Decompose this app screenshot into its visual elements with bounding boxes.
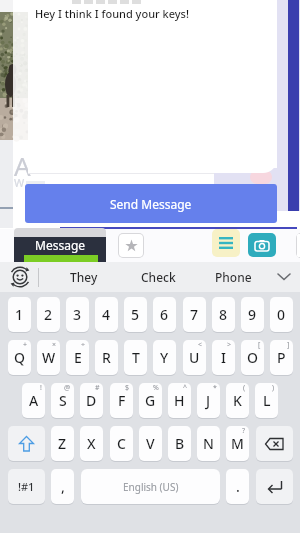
staticText: ? (242, 426, 246, 436)
button[interactable]: They (56, 262, 112, 292)
button[interactable]: X (80, 426, 103, 461)
staticText: B (175, 434, 185, 453)
button[interactable]: P (270, 340, 293, 375)
button[interactable]: G (139, 383, 162, 418)
staticText: 4 (102, 305, 111, 324)
staticText: K (233, 391, 242, 410)
button[interactable]: , (51, 469, 74, 504)
button[interactable]: O (241, 340, 264, 375)
button[interactable]: B (168, 426, 191, 461)
button[interactable] (8, 426, 45, 461)
button[interactable] (248, 233, 276, 257)
button[interactable] (212, 229, 240, 257)
button[interactable]: 2 (37, 297, 60, 332)
staticText: I (221, 348, 226, 367)
staticText: 8 (219, 305, 228, 324)
button[interactable]: N (197, 426, 220, 461)
staticText: 9 (248, 305, 257, 324)
button[interactable]: Message (14, 237, 106, 262)
button[interactable]: E (66, 340, 89, 375)
staticText: A (14, 148, 31, 183)
button[interactable]: T (124, 340, 147, 375)
staticText: They (70, 269, 98, 285)
button[interactable]: Phone (205, 262, 261, 292)
button[interactable]: 3 (66, 297, 89, 332)
staticText: 6 (160, 305, 169, 324)
button[interactable]: Y (153, 340, 176, 375)
staticText: !#1 (18, 479, 35, 494)
staticText: @ (64, 383, 71, 393)
staticText: D (86, 391, 97, 410)
button[interactable]: S (51, 383, 74, 418)
staticText: + (23, 340, 28, 350)
button[interactable]: Z (51, 426, 74, 461)
staticText: M (231, 434, 244, 453)
staticText: X (87, 434, 96, 453)
staticText: < (198, 340, 203, 350)
staticText: × (52, 340, 57, 350)
staticText: T (132, 348, 140, 367)
button[interactable]: 1 (8, 297, 31, 332)
button[interactable] (8, 265, 32, 289)
staticText: English (US) (123, 480, 179, 494)
button[interactable]: I (212, 340, 235, 375)
staticText: ) (272, 383, 275, 393)
staticText: ! (40, 383, 42, 393)
button[interactable]: 0 (270, 297, 293, 332)
button[interactable]: R (95, 340, 118, 375)
button[interactable]: U (183, 340, 206, 375)
button[interactable]: 7 (183, 297, 206, 332)
button[interactable] (267, 262, 300, 292)
staticText: Z (58, 434, 67, 453)
staticText: * (213, 383, 217, 393)
staticText: ( (243, 383, 246, 393)
staticText: W (14, 175, 25, 190)
button[interactable] (118, 233, 144, 258)
button[interactable]: H (168, 383, 191, 418)
button[interactable]: 5 (124, 297, 147, 332)
button[interactable]: V (139, 426, 162, 461)
button[interactable]: F (110, 383, 133, 418)
staticText: N (203, 434, 214, 453)
staticText: [ (258, 340, 261, 350)
button[interactable] (256, 469, 293, 504)
button[interactable] (256, 426, 293, 461)
button[interactable]: Check (130, 262, 186, 292)
staticText: V (146, 434, 155, 453)
button[interactable]: C (110, 426, 133, 461)
button[interactable]: 9 (241, 297, 264, 332)
button[interactable]: . (226, 469, 249, 504)
staticText: J (206, 391, 211, 410)
staticText: W (42, 348, 56, 367)
button[interactable]: L (255, 383, 278, 418)
button[interactable]: Send Message (25, 184, 277, 223)
button[interactable]: 8 (212, 297, 235, 332)
staticText: P (277, 348, 286, 367)
staticText: G (145, 391, 156, 410)
button[interactable]: Q (8, 340, 31, 375)
button[interactable]: English (US) (81, 469, 220, 504)
staticText: C (117, 434, 126, 453)
staticText: . (236, 477, 240, 496)
staticText: , (61, 477, 65, 496)
button[interactable]: K (226, 383, 249, 418)
staticText: Message (35, 237, 86, 253)
staticText: 3 (73, 305, 82, 324)
button[interactable]: !#1 (8, 469, 45, 504)
button[interactable]: M (226, 426, 249, 461)
staticText: Hey I think I found your keys! (35, 6, 189, 21)
staticText: 2 (44, 305, 53, 324)
staticText: 1 (15, 305, 24, 324)
button[interactable]: D (80, 383, 103, 418)
staticText: 0 (277, 305, 286, 324)
staticText: > (227, 340, 232, 350)
staticText: L (263, 391, 271, 410)
button[interactable]: 4 (95, 297, 118, 332)
button[interactable]: J (197, 383, 220, 418)
staticText: # (95, 383, 100, 393)
button[interactable]: 6 (153, 297, 176, 332)
button[interactable]: W (37, 340, 60, 375)
staticText: ÷ (81, 340, 86, 350)
button[interactable]: A (22, 383, 45, 418)
staticText: A (29, 391, 39, 410)
